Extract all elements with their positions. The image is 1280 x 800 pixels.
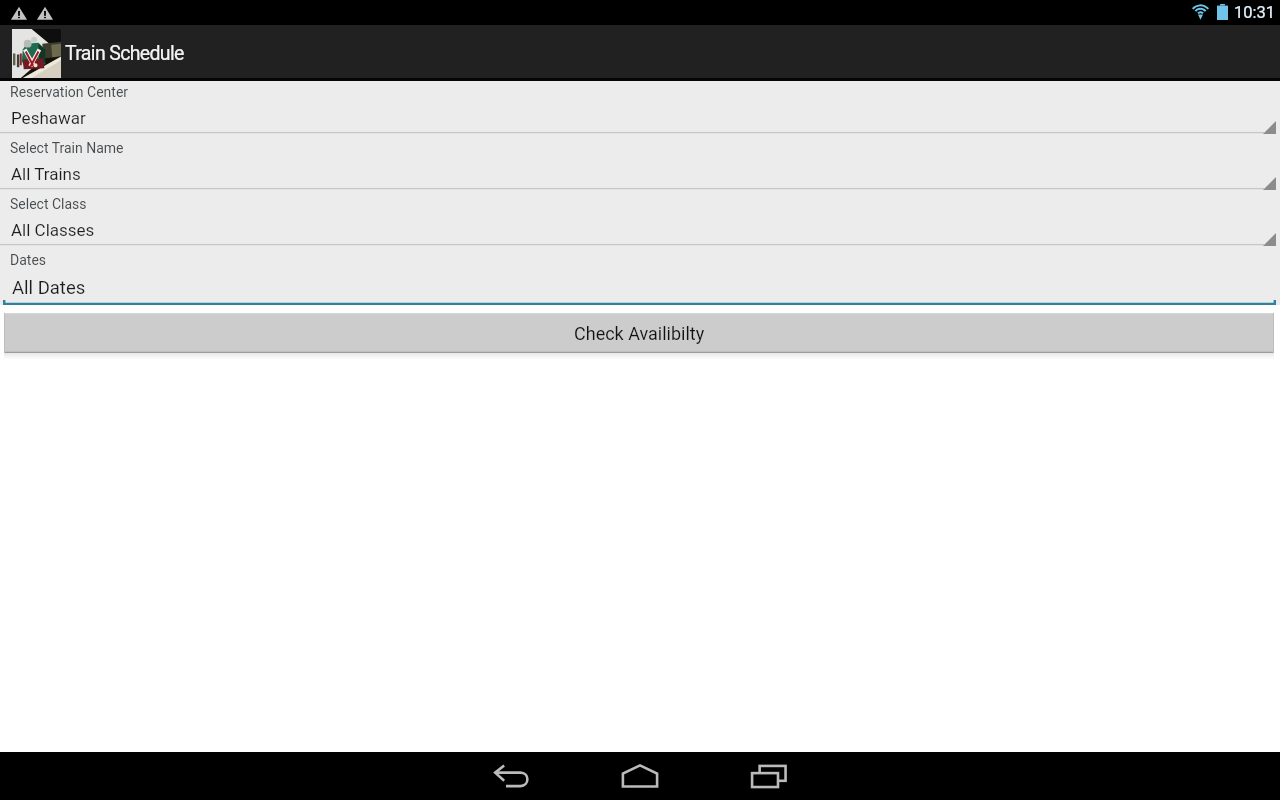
button[interactable]: Select Class [0,189,1280,245]
staticText: Train Schedule [65,42,184,65]
staticText: Select Class [10,196,87,212]
button[interactable]: Reservation Center [0,81,1280,133]
staticText: Select Train Name [10,140,124,156]
button[interactable]: Train Schedule [0,25,1280,81]
button[interactable]: Home [576,752,704,800]
button[interactable]: Back [447,752,575,800]
button[interactable]: Recent apps [705,752,833,800]
button[interactable]: Select Train Name [0,133,1280,189]
staticText: Peshawar [11,108,86,128]
staticText: Reservation Center [10,84,129,100]
staticText: Dates [10,252,47,268]
staticText: All Dates [12,277,86,299]
staticText: All Trains [11,164,81,184]
button[interactable]: Dates [0,245,1280,305]
staticText: Check Availibilty [574,323,705,344]
button[interactable]: Check Availibilty [4,313,1274,353]
staticText: All Classes [11,220,95,240]
staticText: 10:31 [1234,3,1276,22]
